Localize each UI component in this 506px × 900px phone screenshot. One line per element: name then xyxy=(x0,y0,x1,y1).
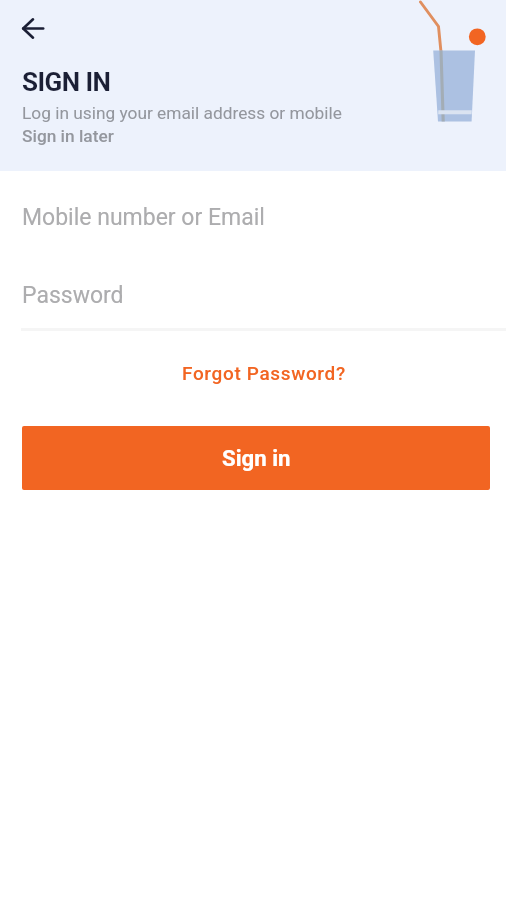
staticText: Sign in xyxy=(222,445,291,471)
staticText: Sign in later xyxy=(22,126,114,146)
staticText: Forgot Password? xyxy=(182,362,346,384)
button[interactable]: Password xyxy=(0,267,506,323)
button[interactable]: Sign in xyxy=(22,426,490,490)
staticText: SIGN IN xyxy=(22,67,111,97)
button[interactable]: Mobile number or Email xyxy=(0,189,506,245)
button[interactable]: Back xyxy=(17,12,49,44)
staticText: Mobile number or Email xyxy=(22,204,265,231)
button[interactable]: Forgot Password? xyxy=(172,356,356,390)
staticText: Password xyxy=(22,282,124,309)
button[interactable]: Sign in later xyxy=(22,126,114,146)
staticText: Log in using your email address or mobil… xyxy=(22,103,342,123)
